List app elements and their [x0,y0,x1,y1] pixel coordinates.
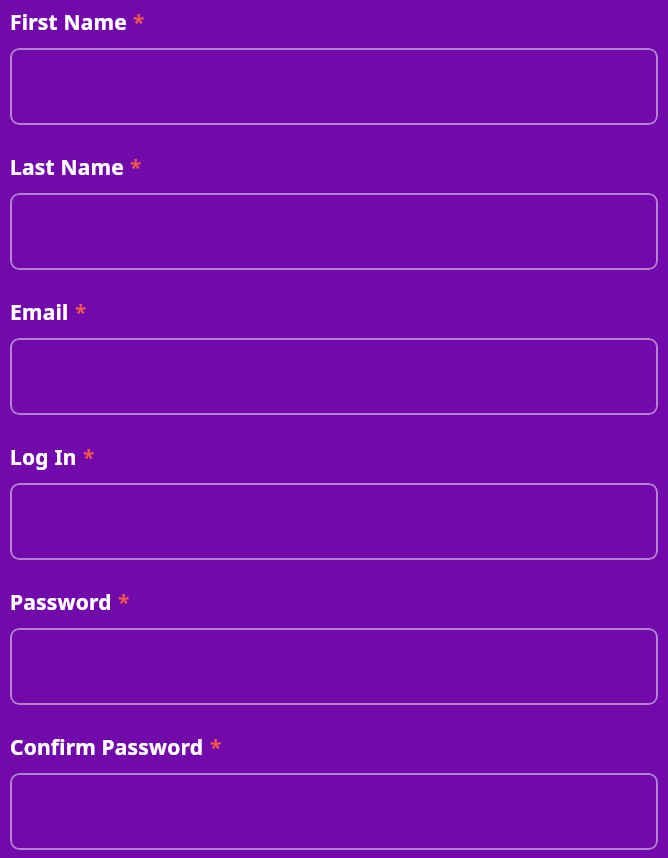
staticText: * [210,733,222,762]
staticText: Log In [10,443,77,472]
staticText: * [118,588,130,617]
button[interactable]: First Name [10,48,658,125]
staticText: First Name [10,8,127,37]
staticText: Password [10,588,112,617]
button[interactable]: Password [10,628,658,705]
staticText: Confirm Password [10,733,204,762]
staticText: Last Name [10,153,124,182]
button[interactable]: Confirm Password [10,773,658,850]
staticText: * [133,8,145,37]
staticText: * [83,443,95,472]
staticText: Email [10,298,69,327]
staticText: * [130,153,142,182]
staticText: * [75,298,87,327]
button[interactable]: Last Name [10,193,658,270]
button[interactable]: Log In [10,483,658,560]
button[interactable]: Email [10,338,658,415]
